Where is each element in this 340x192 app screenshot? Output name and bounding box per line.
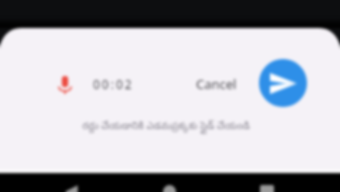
button[interactable]: Recording <box>58 76 72 94</box>
staticText: 00:02 <box>93 76 134 92</box>
button[interactable]: Cancel <box>188 67 245 101</box>
button[interactable]: Home <box>163 185 176 192</box>
button[interactable]: Back <box>65 185 78 192</box>
button[interactable]: Send <box>259 59 307 107</box>
staticText: Cancel <box>196 75 237 93</box>
staticText: రద్దు చేయడానికి ఎడమప్రక్కకు స్లైడ్ చేయండ… <box>82 118 250 134</box>
button[interactable]: Recents <box>260 185 274 192</box>
